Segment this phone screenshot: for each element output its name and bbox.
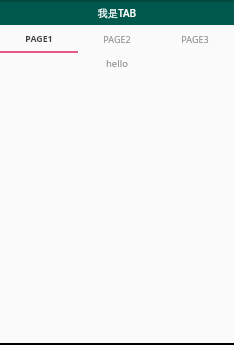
- staticText: 我是TAB: [98, 6, 137, 20]
- button[interactable]: PAGE2: [78, 25, 156, 53]
- staticText: PAGE1: [25, 33, 53, 45]
- button[interactable]: PAGE3: [156, 25, 234, 53]
- button[interactable]: PAGE1: [0, 25, 78, 53]
- staticText: PAGE3: [181, 33, 209, 45]
- staticText: PAGE2: [103, 33, 131, 45]
- staticText: hello: [106, 57, 128, 70]
